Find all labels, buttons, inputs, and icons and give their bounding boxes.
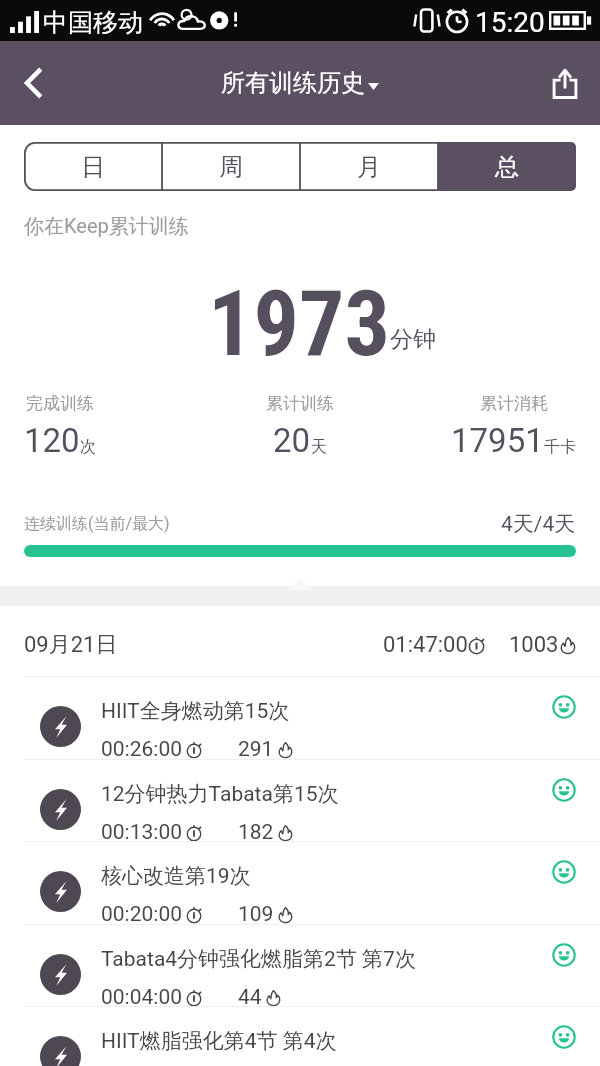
staticText: 千卡 [544, 437, 576, 457]
staticText: 你在Keep累计训练 [24, 214, 189, 239]
staticText: 分钟 [390, 325, 436, 354]
button[interactable]: 核心改造第19次 [0, 841, 600, 923]
staticText: 所有训练历史 [221, 68, 365, 98]
staticText: 12分钟热力Tabata第15次 [101, 781, 339, 807]
staticText: 月 [357, 152, 381, 182]
staticText: 天 [311, 437, 327, 457]
staticText: 中国移动 [43, 7, 143, 38]
staticText: 连续训练(当前/最大) [24, 514, 170, 534]
staticText: Tabata4分钟强化燃脂第2节 第7次 [101, 946, 416, 972]
staticText: HIIT全身燃动第15次 [101, 698, 290, 724]
button[interactable]: 日 [24, 142, 162, 191]
button[interactable]: 所有训练历史 [221, 68, 379, 98]
staticText: 00:13:00 [101, 820, 182, 845]
staticText: 1003 [509, 632, 559, 658]
button[interactable]: Share [529, 41, 600, 125]
button[interactable]: 月 [300, 142, 438, 191]
staticText: 44 [238, 985, 262, 1010]
staticText: 17951 [451, 421, 544, 460]
staticText: 291 [238, 737, 274, 762]
staticText: 次 [80, 437, 96, 457]
staticText: 累计训练 [266, 393, 334, 414]
button[interactable]: HIIT全身燃动第15次 [0, 676, 600, 758]
button[interactable]: 12分钟热力Tabata第15次 [0, 759, 600, 841]
staticText: 120 [24, 421, 80, 460]
staticText: 周 [219, 152, 243, 182]
staticText: 00:20:00 [101, 902, 182, 927]
staticText: 4天/4天 [501, 511, 576, 537]
staticText: 20 [273, 421, 311, 460]
staticText: 00:04:00 [101, 985, 182, 1010]
button[interactable]: 总 [438, 142, 576, 191]
button[interactable]: 周 [162, 142, 300, 191]
button[interactable]: Back [0, 41, 66, 125]
staticText: 总 [495, 152, 519, 182]
staticText: 完成训练 [26, 393, 94, 414]
staticText: 09月21日 [24, 631, 118, 659]
staticText: 15:20 [475, 6, 545, 39]
button[interactable]: Tabata4分钟强化燃脂第2节 第7次 [0, 924, 600, 1006]
staticText: HIIT燃脂强化第4节 第4次 [101, 1028, 337, 1054]
staticText: 109 [238, 902, 274, 927]
button[interactable]: HIIT燃脂强化第4节 第4次 [0, 1006, 600, 1066]
staticText: 1973 [208, 272, 390, 377]
staticText: 182 [238, 820, 274, 845]
staticText: 日 [81, 152, 105, 182]
staticText: 00:26:00 [101, 737, 182, 762]
staticText: 核心改造第19次 [101, 863, 251, 889]
staticText: 01:47:00 [383, 632, 468, 658]
staticText: 累计消耗 [480, 393, 548, 414]
